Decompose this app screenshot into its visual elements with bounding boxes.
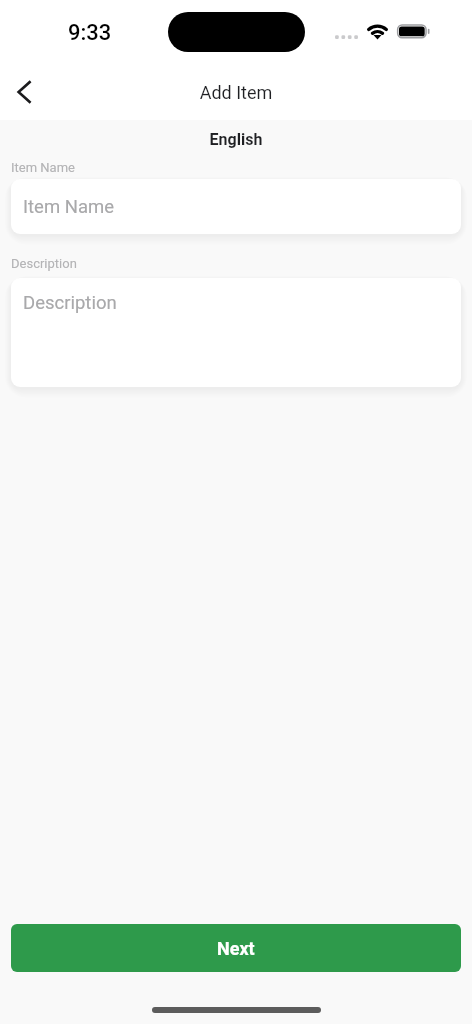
staticText: English	[0, 130, 472, 149]
button[interactable]: Back	[0, 68, 48, 116]
staticText: Add Item	[0, 82, 472, 103]
staticText: Next	[217, 938, 255, 959]
button[interactable]: Description	[11, 278, 461, 387]
button[interactable]: Next	[11, 924, 461, 972]
staticText: Item Name	[23, 196, 115, 218]
button[interactable]: Item Name	[11, 179, 461, 234]
staticText: Description	[11, 256, 77, 271]
staticText: Description	[23, 292, 117, 314]
staticText: 9:33	[68, 20, 112, 46]
staticText: Item Name	[11, 160, 75, 175]
